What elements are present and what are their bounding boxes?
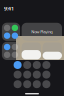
button[interactable]: Hearing	[42, 80, 50, 88]
staticText: Now Playing	[31, 29, 52, 34]
button[interactable]: Rotation Lock	[4, 52, 10, 58]
button[interactable]: Timer	[23, 61, 31, 69]
button[interactable]: Airplane Mode	[4, 25, 10, 31]
button[interactable]: Cellular Data	[12, 25, 18, 31]
button[interactable]: Calculator	[33, 61, 41, 69]
button[interactable]: Wi-Fi	[4, 32, 10, 39]
button[interactable]: Flashlight	[14, 61, 22, 69]
button[interactable]: Accessibility	[33, 80, 41, 88]
button[interactable]: Focus	[4, 44, 10, 50]
button[interactable]: Dark Mode	[14, 80, 22, 88]
button[interactable]: Low Power	[23, 80, 31, 88]
button[interactable]: Magnifier	[42, 71, 50, 79]
button[interactable]: Silent Mode	[12, 52, 18, 58]
button[interactable]: Camera	[42, 61, 50, 69]
button[interactable]: Slider	[43, 42, 62, 59]
staticText: 9:41	[4, 5, 14, 12]
button[interactable]: Slider	[22, 42, 41, 59]
button[interactable]: Screen Mirroring	[12, 44, 18, 50]
button[interactable]: Bluetooth	[12, 32, 18, 39]
button[interactable]: Remote	[14, 71, 22, 79]
button[interactable]: Voice Memo	[33, 71, 41, 79]
button[interactable]: Notes	[23, 71, 31, 79]
